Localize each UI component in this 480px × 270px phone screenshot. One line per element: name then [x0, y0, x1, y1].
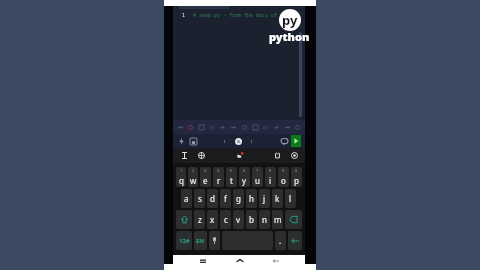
button[interactable]: 1 [176, 167, 186, 187]
button[interactable]: Console [278, 135, 290, 147]
button[interactable]: Quick actions [175, 135, 187, 147]
button[interactable]: b [246, 210, 257, 229]
button[interactable]: Editor action 4 [208, 120, 217, 134]
button[interactable]: 9 [278, 167, 289, 187]
button[interactable]: Editor action 1 [176, 120, 185, 134]
staticText: 3 [204, 168, 207, 173]
button[interactable]: 6 [239, 167, 250, 187]
button[interactable]: Settings [288, 149, 301, 162]
button[interactable]: d [207, 189, 218, 208]
staticText: w [190, 175, 197, 186]
staticText: 7 [256, 168, 259, 173]
button[interactable]: Recents [196, 255, 209, 266]
staticText: 8 [269, 168, 272, 173]
staticText: x [210, 214, 215, 225]
staticText: b [249, 214, 254, 225]
staticText: p [294, 175, 299, 186]
button[interactable]: Select text [178, 149, 191, 162]
button[interactable]: 3 [200, 167, 211, 187]
button[interactable]: Shift [176, 210, 192, 229]
button[interactable]: a [181, 189, 192, 208]
staticText: 6 [243, 168, 246, 173]
staticText: q [179, 175, 184, 186]
staticText: c [224, 214, 228, 225]
button[interactable]: 4 [213, 167, 224, 187]
button[interactable]: Editor action 3 [197, 120, 206, 134]
button[interactable]: Voice input [232, 135, 244, 147]
button[interactable]: Run [291, 135, 301, 147]
button[interactable]: n [259, 210, 270, 229]
button[interactable]: EN [194, 231, 207, 250]
staticText: a [184, 193, 189, 204]
button[interactable]: 7 [252, 167, 263, 187]
button[interactable]: Editor action 7 [240, 120, 249, 134]
staticText: # snap.py - from the docs of PySn [193, 12, 293, 19]
button[interactable]: Stickers [271, 149, 284, 162]
staticText: o [281, 175, 286, 186]
button[interactable]: v [233, 210, 244, 229]
staticText: 0 [295, 168, 298, 173]
staticText: j [263, 193, 266, 204]
staticText: python [269, 29, 310, 44]
button[interactable]: Editor action 10 [272, 120, 281, 134]
button[interactable]: Editor action 2 [186, 120, 195, 134]
button[interactable]: j [259, 189, 270, 208]
button[interactable]: s [194, 189, 205, 208]
staticText: py [282, 11, 298, 29]
button[interactable]: Editor action 12 [293, 120, 302, 134]
button[interactable]: Backspace [285, 210, 302, 229]
button[interactable]: Editor action 5 [218, 120, 227, 134]
button[interactable]: Home [233, 255, 246, 266]
button[interactable]: Enter [288, 231, 302, 250]
staticText: s [198, 193, 202, 204]
button[interactable]: Back [269, 255, 282, 266]
staticText: i [269, 175, 272, 186]
button[interactable]: 5 [226, 167, 237, 187]
staticText: 12# [179, 237, 190, 245]
staticText: 2 [192, 168, 195, 173]
staticText: . [279, 235, 282, 246]
button[interactable]: Voice [209, 231, 220, 250]
staticText: z [198, 214, 202, 225]
staticText: u [255, 175, 260, 186]
button[interactable]: 8 [265, 167, 276, 187]
staticText: h [249, 193, 254, 204]
staticText: t [230, 175, 233, 186]
staticText: f [224, 193, 227, 204]
button[interactable]: 2 [188, 167, 198, 187]
button[interactable]: Editor action 9 [261, 120, 270, 134]
button[interactable]: z [194, 210, 205, 229]
staticText: g [236, 193, 241, 204]
button[interactable]: Save [187, 135, 199, 147]
staticText: k [275, 193, 280, 204]
staticText: 4 [217, 168, 220, 173]
button[interactable]: . [275, 231, 286, 250]
staticText: m [274, 214, 282, 225]
staticText: y [242, 175, 247, 186]
button[interactable]: h [246, 189, 257, 208]
button[interactable]: k [272, 189, 283, 208]
staticText: e [203, 175, 208, 186]
button[interactable]: Editor action 6 [229, 120, 238, 134]
button[interactable]: x [207, 210, 218, 229]
button[interactable]: c [220, 210, 231, 229]
button[interactable]: Translate [195, 149, 208, 162]
staticText: EN [196, 237, 205, 245]
staticText: n [262, 214, 267, 225]
staticText: r [217, 175, 221, 186]
button[interactable]: f [220, 189, 231, 208]
staticText: l [289, 193, 292, 204]
staticText: 1 [182, 12, 186, 19]
button[interactable]: l [285, 189, 296, 208]
button[interactable]: m [272, 210, 283, 229]
staticText: 1 [180, 168, 183, 173]
button[interactable]: 12# [176, 231, 192, 250]
button[interactable]: Editor action 11 [283, 120, 292, 134]
button[interactable]: 0 [291, 167, 302, 187]
button[interactable]: Editor action 8 [251, 120, 260, 134]
staticText: d [210, 193, 215, 204]
button[interactable]: g [233, 189, 244, 208]
button[interactable]: Gesture typing [232, 149, 246, 163]
